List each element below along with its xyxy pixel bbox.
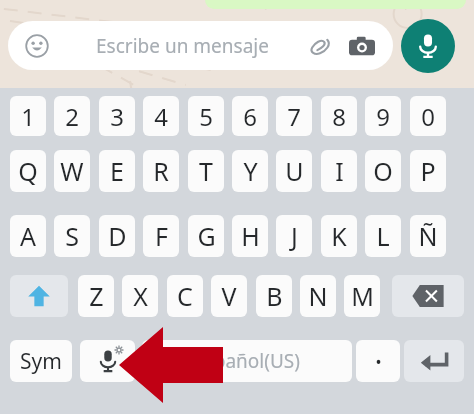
- staticText: 5: [199, 100, 213, 133]
- staticText: C: [177, 279, 193, 313]
- staticText: U: [285, 154, 304, 188]
- button[interactable]: Grabar mensaje de voz: [401, 19, 455, 73]
- button[interactable]: 1: [10, 96, 46, 136]
- staticText: Español(US): [194, 348, 300, 374]
- button[interactable]: D: [99, 215, 135, 257]
- button[interactable]: L: [365, 215, 401, 257]
- staticText: Q: [18, 154, 38, 188]
- button[interactable]: I: [321, 150, 357, 192]
- staticText: Y: [243, 154, 258, 188]
- staticText: Sym: [20, 347, 62, 376]
- button[interactable]: Sym: [10, 340, 72, 382]
- staticText: E: [110, 154, 124, 188]
- button[interactable]: R: [143, 150, 179, 192]
- button[interactable]: N: [300, 275, 336, 317]
- staticText: R: [153, 154, 169, 188]
- staticText: P: [420, 154, 436, 188]
- button[interactable]: Q: [10, 150, 46, 192]
- button[interactable]: U: [276, 150, 312, 192]
- staticText: D: [108, 219, 127, 253]
- button[interactable]: 9: [365, 96, 401, 136]
- button[interactable]: 8: [321, 96, 357, 136]
- button[interactable]: 0: [410, 96, 446, 136]
- staticText: 4: [154, 100, 168, 133]
- button[interactable]: Dictado por voz: [80, 340, 135, 382]
- staticText: 7: [287, 100, 301, 133]
- button[interactable]: 4: [143, 96, 179, 136]
- button[interactable]: A: [10, 215, 46, 257]
- staticText: H: [241, 219, 260, 253]
- button[interactable]: Mayúsculas: [10, 275, 68, 317]
- button[interactable]: Enter: [404, 340, 464, 382]
- staticText: 0: [421, 100, 435, 133]
- staticText: 8: [332, 100, 346, 133]
- button[interactable]: ·: [356, 340, 400, 382]
- staticText: X: [133, 279, 148, 313]
- button[interactable]: Y: [232, 150, 268, 192]
- button[interactable]: T: [188, 150, 224, 192]
- button[interactable]: 7: [276, 96, 312, 136]
- button[interactable]: 5: [188, 96, 224, 136]
- staticText: G: [197, 219, 216, 253]
- staticText: K: [331, 219, 347, 253]
- button[interactable]: M: [344, 275, 380, 317]
- button[interactable]: O: [365, 150, 401, 192]
- staticText: ·: [374, 341, 383, 382]
- button[interactable]: W: [54, 150, 90, 192]
- button[interactable]: 3: [99, 96, 135, 136]
- staticText: 9: [376, 100, 390, 133]
- staticText: J: [291, 219, 298, 253]
- staticText: I: [335, 154, 344, 188]
- button[interactable]: Emoji: [22, 31, 52, 61]
- button[interactable]: E: [99, 150, 135, 192]
- button[interactable]: Cámara: [345, 29, 379, 63]
- staticText: L: [376, 219, 390, 253]
- staticText: 6: [243, 100, 257, 133]
- button[interactable]: 2: [54, 96, 90, 136]
- staticText: 1: [21, 100, 35, 133]
- staticText: 3: [110, 100, 124, 133]
- button[interactable]: C: [167, 275, 203, 317]
- button[interactable]: G: [188, 215, 224, 257]
- button[interactable]: Ñ: [410, 215, 446, 257]
- staticText: 2: [65, 100, 79, 133]
- staticText: Escribe un mensaje: [62, 33, 303, 59]
- staticText: N: [308, 279, 328, 313]
- button[interactable]: S: [54, 215, 90, 257]
- button[interactable]: V: [211, 275, 247, 317]
- staticText: B: [266, 279, 283, 313]
- button[interactable]: Español(US): [142, 340, 352, 382]
- button[interactable]: P: [410, 150, 446, 192]
- button[interactable]: K: [321, 215, 357, 257]
- button[interactable]: F: [143, 215, 179, 257]
- staticText: O: [373, 154, 393, 188]
- staticText: F: [155, 219, 168, 253]
- staticText: A: [20, 219, 36, 253]
- staticText: W: [60, 154, 84, 188]
- button[interactable]: X: [122, 275, 158, 317]
- button[interactable]: Z: [78, 275, 114, 317]
- button[interactable]: 6: [232, 96, 268, 136]
- button[interactable]: B: [256, 275, 292, 317]
- button[interactable]: Borrar: [392, 275, 464, 317]
- button[interactable]: J: [276, 215, 312, 257]
- staticText: Z: [89, 279, 104, 313]
- staticText: T: [199, 154, 213, 188]
- staticText: V: [221, 279, 237, 313]
- staticText: M: [351, 279, 374, 313]
- staticText: Ñ: [418, 219, 438, 253]
- staticText: S: [65, 219, 79, 253]
- button[interactable]: H: [232, 215, 268, 257]
- button[interactable]: Adjuntar: [303, 29, 337, 63]
